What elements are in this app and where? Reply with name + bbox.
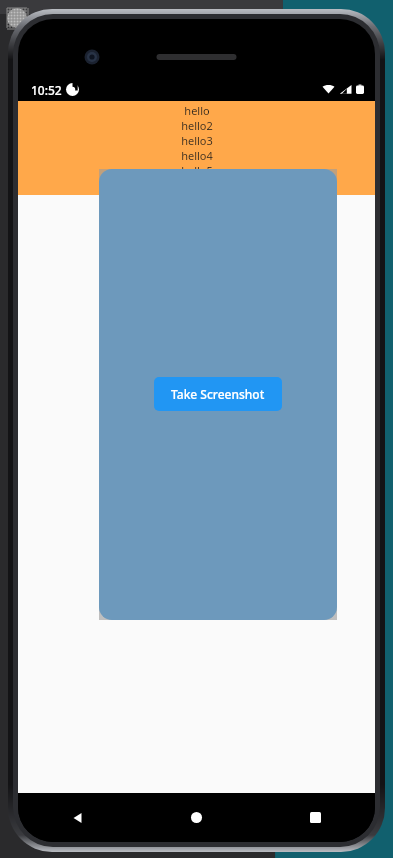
button[interactable]: Recent apps: [256, 793, 375, 842]
staticText: hello3: [181, 133, 213, 148]
staticText: hello4: [181, 148, 213, 163]
button[interactable]: Take Screenshot: [154, 377, 282, 411]
button[interactable]: Home: [137, 793, 256, 842]
staticText: hello5: [181, 163, 213, 178]
button[interactable]: Back: [18, 793, 137, 842]
staticText: hello: [184, 103, 210, 118]
staticText: hello2: [181, 118, 213, 133]
staticText: Take Screenshot: [171, 386, 265, 402]
staticText: 10:52: [31, 82, 62, 98]
